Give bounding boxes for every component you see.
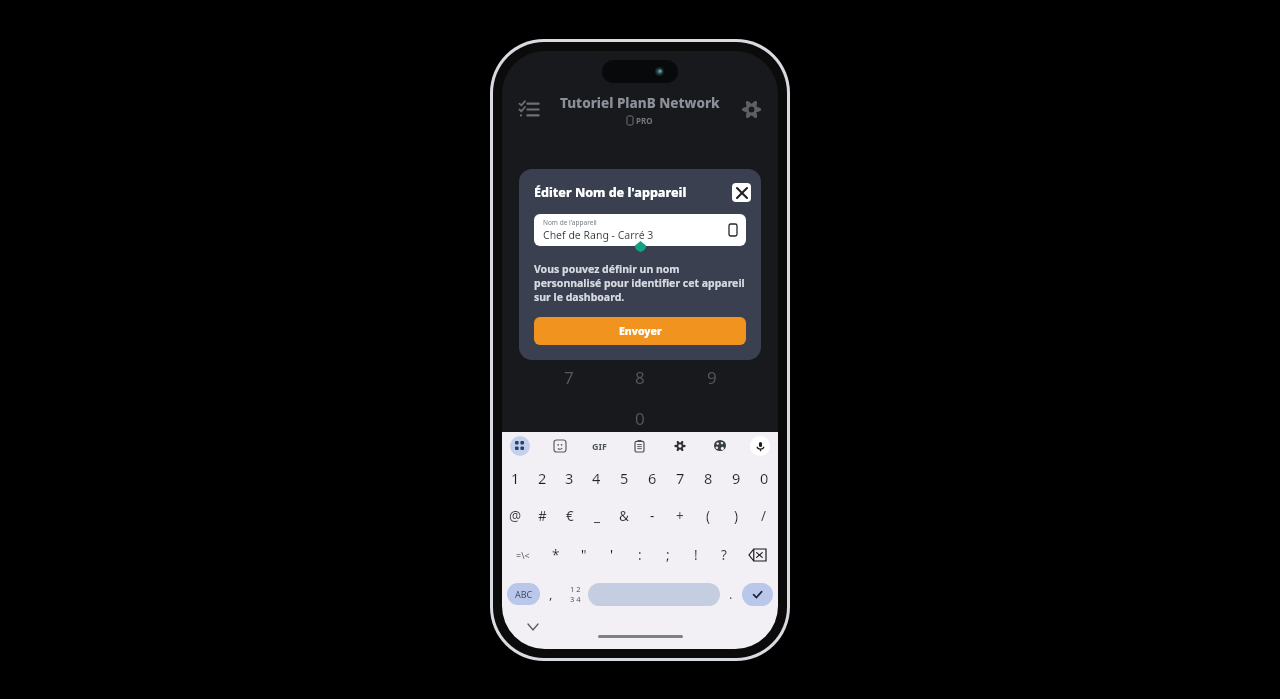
button[interactable]: Tasks xyxy=(510,91,548,127)
button[interactable]: Chiffres xyxy=(562,574,588,614)
button[interactable]: @ xyxy=(502,496,529,535)
staticText: Tutoriel PlanB Network xyxy=(560,94,720,112)
staticText: * xyxy=(552,546,560,564)
button[interactable]: Supprimer xyxy=(738,535,776,574)
staticText: € xyxy=(566,507,574,525)
staticText: 9 xyxy=(707,366,717,389)
staticText: =\< xyxy=(516,549,530,561)
staticText: 3 xyxy=(565,468,574,488)
button[interactable]: ) xyxy=(722,496,750,535)
button[interactable]: ( xyxy=(694,496,722,535)
staticText: PRO xyxy=(636,115,653,126)
staticText: / xyxy=(761,507,767,525)
button[interactable]: Micro xyxy=(750,436,770,456)
staticText: ' xyxy=(610,546,614,564)
button[interactable]: - xyxy=(638,496,666,535)
staticText: 1 2 xyxy=(570,584,581,594)
button[interactable]: " xyxy=(570,535,598,574)
staticText: , xyxy=(549,585,553,603)
button[interactable]: GIF xyxy=(590,440,609,452)
button[interactable]: 7 xyxy=(666,460,694,496)
staticText: - xyxy=(650,507,655,525)
button[interactable]: 3 xyxy=(556,460,583,496)
button[interactable]: Clavier xyxy=(510,436,530,456)
staticText: : xyxy=(638,546,642,564)
button[interactable]: . xyxy=(720,574,742,614)
button[interactable]: Settings xyxy=(732,91,770,127)
button[interactable]: 6 xyxy=(638,460,666,496)
button[interactable]: 0 xyxy=(750,460,778,496)
button[interactable]: ; xyxy=(654,535,682,574)
button[interactable]: Presse-papiers xyxy=(629,436,649,456)
staticText: 0 xyxy=(635,407,645,430)
button[interactable]: Envoyer xyxy=(534,317,746,345)
button[interactable]: Paramètres xyxy=(670,436,690,456)
button[interactable]: ABC xyxy=(507,583,540,605)
staticText: GIF xyxy=(592,440,607,452)
button[interactable]: Masquer le clavier xyxy=(526,620,540,634)
staticText: Éditer Nom de l'appareil xyxy=(534,184,732,201)
button[interactable]: 4 xyxy=(583,460,610,496)
staticText: 9 xyxy=(732,468,741,488)
staticText: 8 xyxy=(704,468,713,488)
staticText: 0 xyxy=(760,468,769,488)
staticText: Nom de l'appareil xyxy=(543,218,597,227)
staticText: 3 4 xyxy=(570,594,581,604)
button[interactable]: 2 xyxy=(529,460,556,496)
button[interactable]: ! xyxy=(682,535,710,574)
button[interactable]: 8 xyxy=(694,460,722,496)
button[interactable]: : xyxy=(626,535,654,574)
staticText: ( xyxy=(706,507,711,525)
staticText: 2 xyxy=(538,468,547,488)
button[interactable]: Valider xyxy=(742,583,773,606)
staticText: Envoyer xyxy=(619,324,662,338)
button[interactable]: ' xyxy=(598,535,626,574)
button[interactable]: ? xyxy=(710,535,738,574)
staticText: + xyxy=(676,507,684,525)
button[interactable]: * xyxy=(542,535,570,574)
staticText: 7 xyxy=(564,366,574,389)
button[interactable]: & xyxy=(610,496,638,535)
button[interactable]: Autocollants xyxy=(550,436,570,456)
staticText: 5 xyxy=(620,468,629,488)
staticText: ABC xyxy=(515,588,533,600)
button[interactable]: =\< xyxy=(504,535,542,574)
staticText: 8 xyxy=(635,366,645,389)
staticText: Vous pouvez définir un nom personnalisé … xyxy=(534,262,746,304)
staticText: 6 xyxy=(648,468,657,488)
button[interactable]: 9 xyxy=(722,460,750,496)
button[interactable]: 1 xyxy=(502,460,529,496)
staticText: " xyxy=(581,546,587,564)
button[interactable]: , xyxy=(540,574,562,614)
button[interactable]: Thèmes xyxy=(710,436,730,456)
staticText: @ xyxy=(509,507,522,525)
button[interactable]: Fermer xyxy=(732,183,751,202)
staticText: Chef de Rang - Carré 3 xyxy=(543,228,654,242)
staticText: 1 xyxy=(511,468,520,488)
button[interactable]: + xyxy=(666,496,694,535)
staticText: 4 xyxy=(592,468,601,488)
button[interactable]: € xyxy=(556,496,583,535)
staticText: _ xyxy=(594,507,600,525)
staticText: . xyxy=(729,585,733,603)
staticText: # xyxy=(538,507,547,525)
staticText: ! xyxy=(694,546,698,564)
button[interactable]: 5 xyxy=(610,460,638,496)
button[interactable]: Nom de l'appareil xyxy=(534,214,746,246)
staticText: ; xyxy=(666,546,670,564)
staticText: ) xyxy=(734,507,739,525)
button[interactable]: / xyxy=(750,496,778,535)
button[interactable]: _ xyxy=(583,496,610,535)
staticText: 7 xyxy=(676,468,685,488)
button[interactable]: # xyxy=(529,496,556,535)
staticText: ? xyxy=(721,546,727,564)
staticText: & xyxy=(619,507,629,525)
button[interactable]: Espace xyxy=(588,583,720,606)
